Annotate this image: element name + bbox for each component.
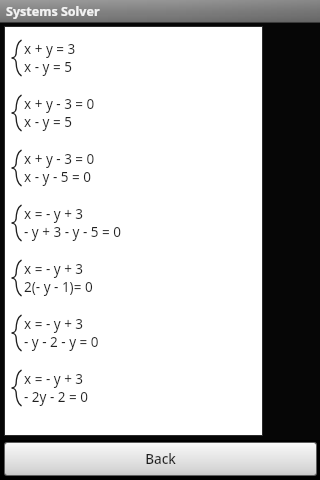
staticText: x - y = 5 [24,113,72,131]
button[interactable]: Back [5,443,316,475]
staticText: x = - y + 3 [24,370,84,388]
staticText: x = - y + 3 [24,260,84,278]
staticText: x + y - 3 = 0 [24,95,95,113]
staticText: - y - 2 - y = 0 [24,333,99,351]
staticText: Systems Solver [6,3,100,20]
staticText: x + y - 3 = 0 [24,150,95,168]
staticText: x + y = 3 [24,40,76,58]
staticText: - 2y - 2 = 0 [24,388,89,406]
staticText: x - y = 5 [24,58,72,76]
staticText: Back [145,450,176,468]
staticText: x - y - 5 = 0 [24,168,91,186]
staticText: 2(- y - 1)= 0 [24,278,93,296]
staticText: - y + 3 - y - 5 = 0 [24,223,122,241]
staticText: x = - y + 3 [24,315,84,333]
staticText: x = - y + 3 [24,205,84,223]
